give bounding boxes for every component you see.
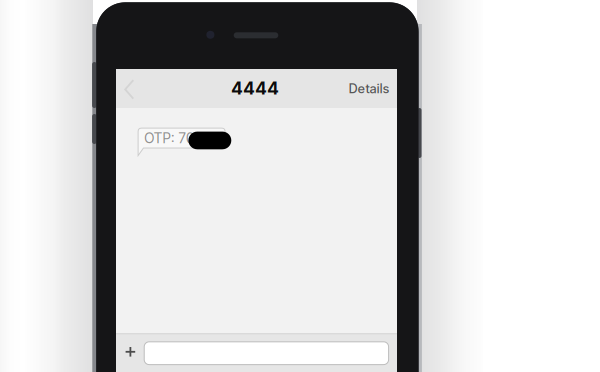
staticText: Details (348, 81, 389, 96)
staticText: OTP: 70 (144, 130, 195, 147)
button[interactable]: Back (123, 79, 153, 101)
button[interactable]: Details (334, 69, 404, 108)
button[interactable]: Add attachment (117, 337, 143, 367)
staticText: 4444 (231, 77, 279, 99)
button[interactable]: Message (144, 342, 389, 365)
